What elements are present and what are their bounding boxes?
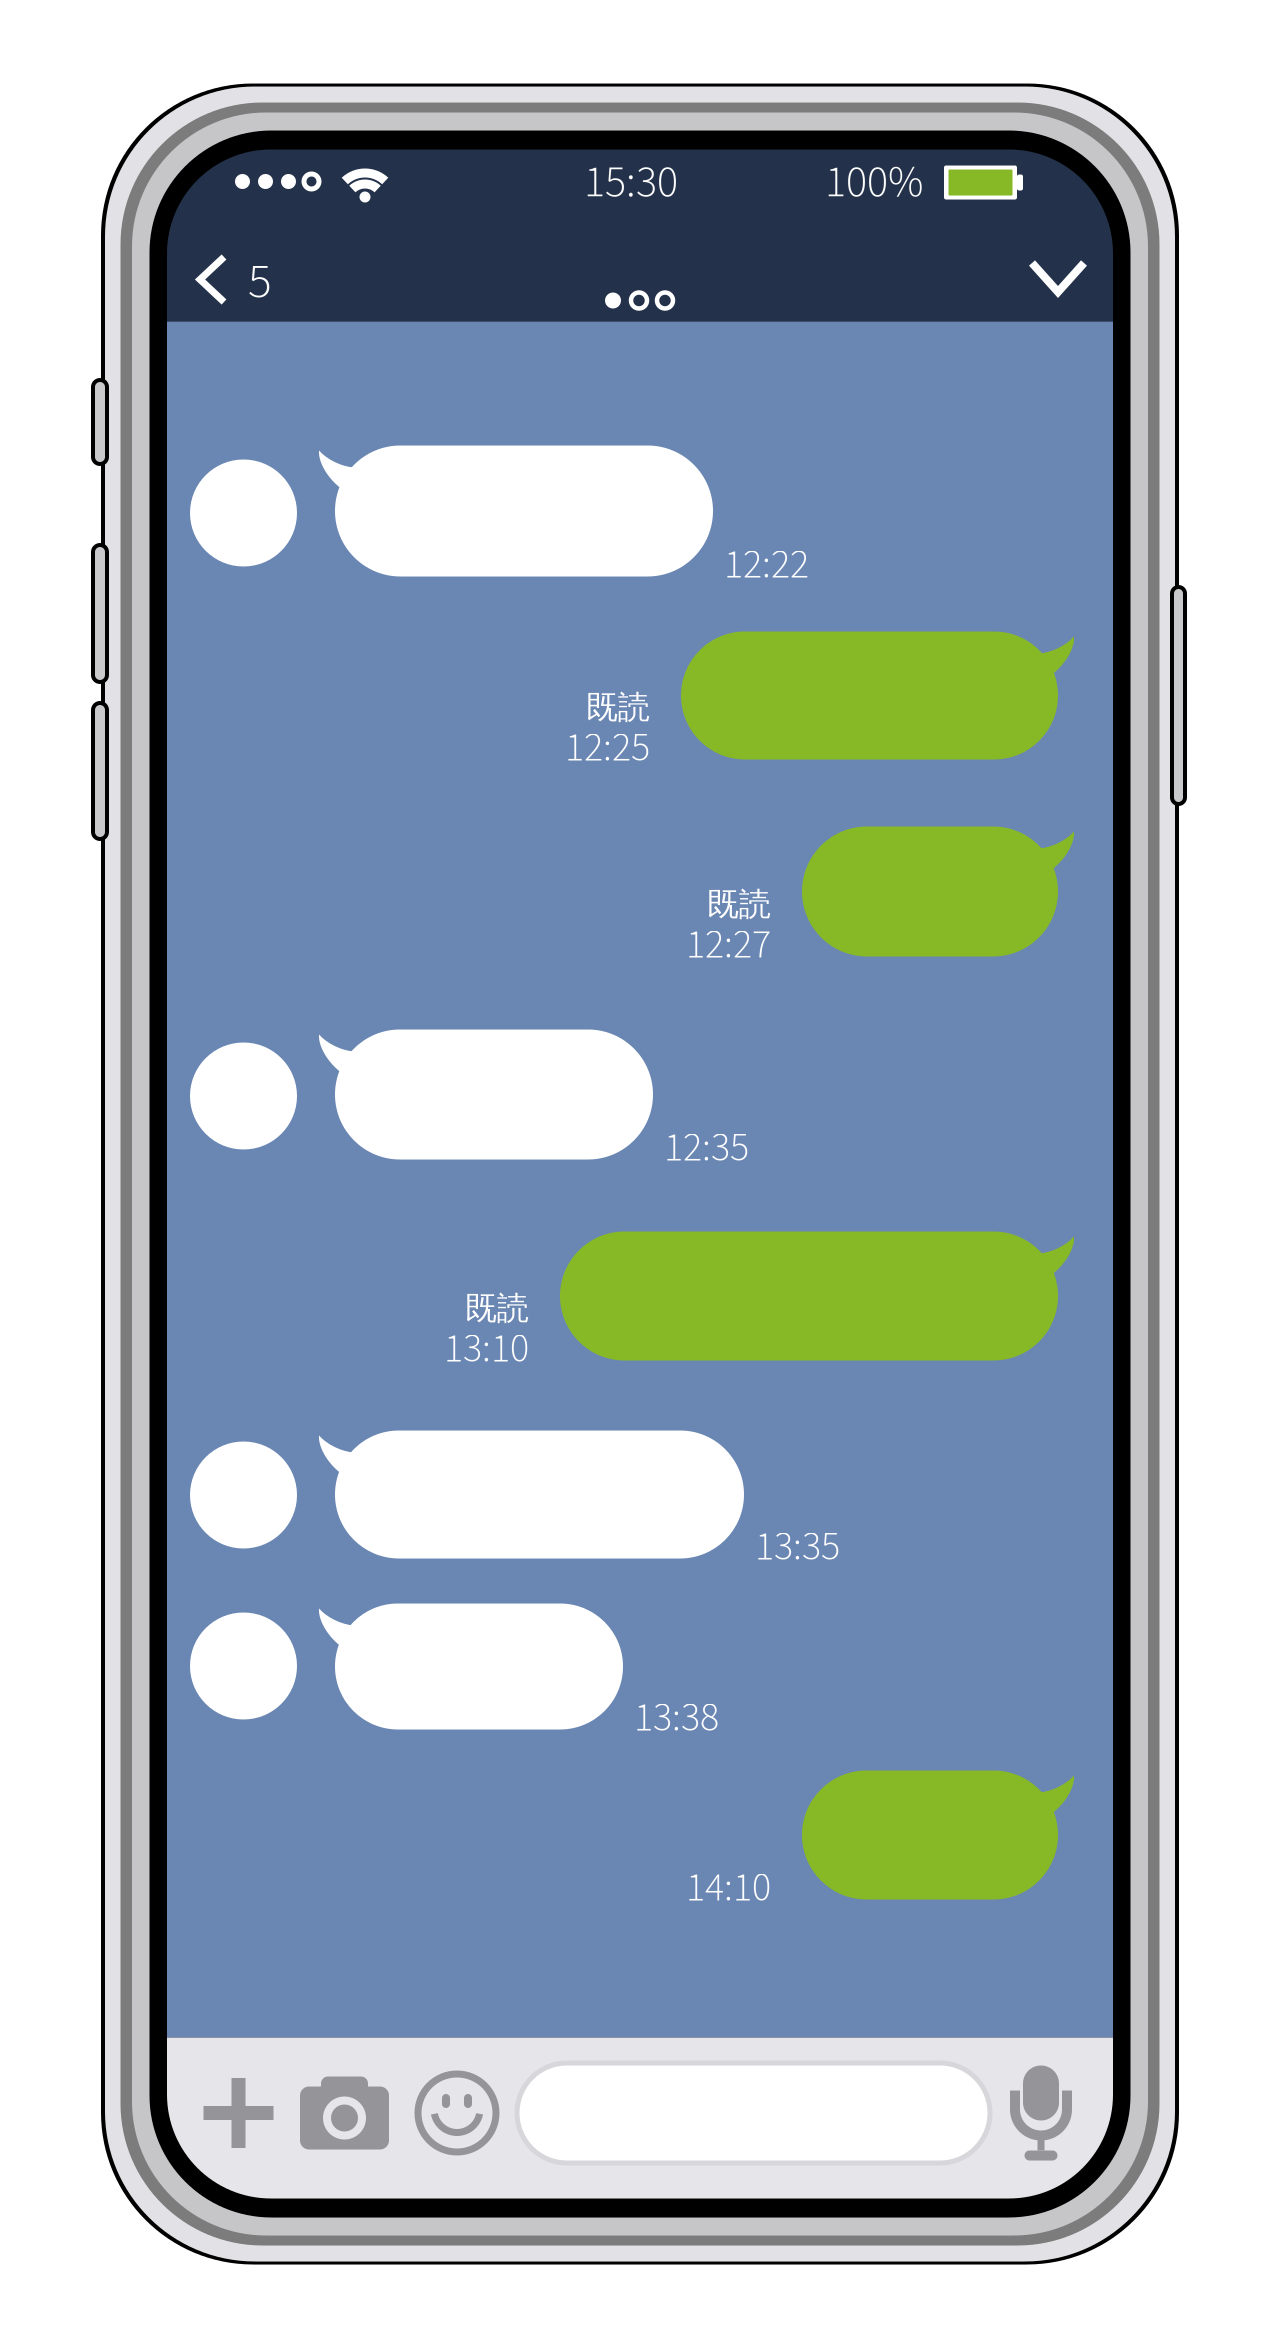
button[interactable]: 5 <box>194 215 278 321</box>
staticText: 既読 <box>586 687 650 727</box>
button[interactable]: Camera <box>292 2053 397 2173</box>
button[interactable]: Stickers <box>397 2053 517 2173</box>
staticText: 13:38 <box>634 1689 719 1746</box>
staticText: 12:35 <box>664 1119 749 1176</box>
staticText: 14:10 <box>686 1859 771 1916</box>
staticText: 13:35 <box>755 1518 840 1575</box>
staticText: 既読 <box>465 1288 529 1328</box>
button[interactable]: Voice message <box>1010 2053 1072 2173</box>
staticText: 15:30 <box>584 151 678 214</box>
staticText: 100% <box>825 151 923 214</box>
button[interactable]: Message <box>517 2063 990 2163</box>
staticText: 5 <box>248 246 272 317</box>
staticText: 12:27 <box>686 916 771 973</box>
staticText: 12:22 <box>724 536 809 593</box>
staticText: 12:25 <box>565 719 650 776</box>
button[interactable]: Collapse <box>1020 215 1096 321</box>
staticText: 13:10 <box>444 1320 529 1377</box>
staticText: 既読 <box>707 884 771 924</box>
button[interactable]: Add <box>185 2053 292 2173</box>
